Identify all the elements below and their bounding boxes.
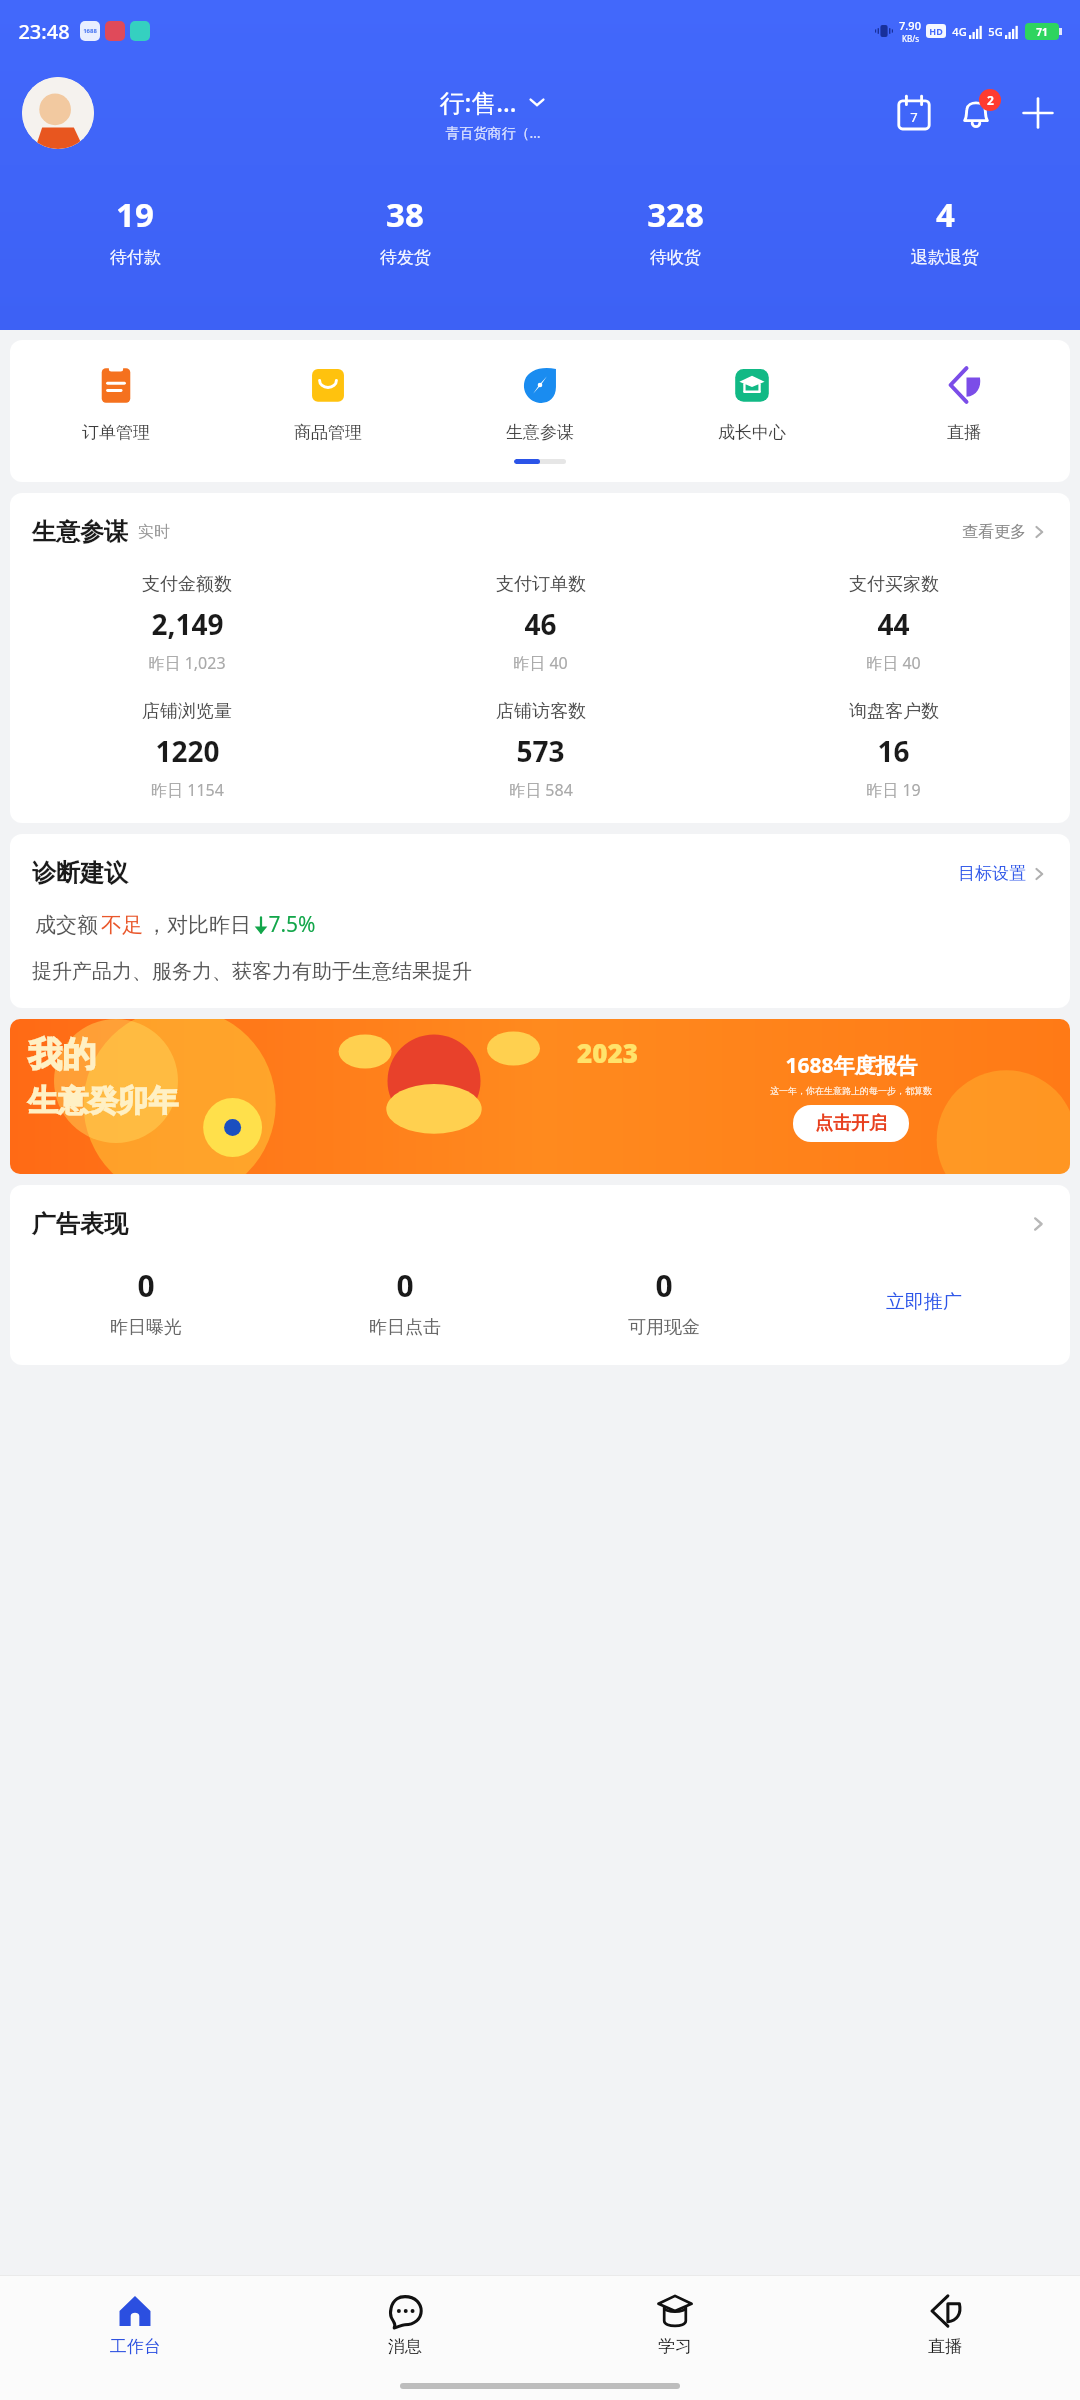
button[interactable]: 19 [0, 192, 270, 268]
button[interactable]: 4 [810, 192, 1080, 268]
staticText: 生意参谋 [506, 422, 574, 443]
staticText: 我的 [28, 1033, 96, 1076]
staticText: 青百货商行（… [445, 123, 541, 142]
staticText: 44 [877, 605, 910, 643]
button[interactable]: 直播 [810, 2276, 1080, 2372]
staticText: 这一年，你在生意路上的每一步，都算数 [770, 1085, 932, 1096]
button[interactable]: 0 [16, 1265, 275, 1339]
button[interactable]: 支付买家数 [717, 573, 1070, 674]
button[interactable]: Notifications [954, 91, 998, 135]
button[interactable]: 0 [534, 1265, 794, 1339]
button[interactable]: 学习 [540, 2276, 810, 2372]
staticText: 待收货 [650, 247, 701, 268]
staticText: 4G [952, 24, 967, 39]
staticText: 退款退货 [911, 247, 979, 268]
staticText: KB/s [902, 33, 919, 44]
staticText: 直播 [928, 2336, 962, 2357]
button[interactable]: 查看更多 [962, 522, 1048, 542]
staticText: 询盘客户数 [849, 700, 939, 723]
staticText: 支付金额数 [142, 573, 232, 596]
button[interactable]: 成长中心 [646, 362, 858, 443]
staticText: 昨日 40 [513, 652, 568, 674]
staticText: 7.5% [268, 910, 316, 939]
button[interactable]: 我的 [10, 1019, 1070, 1174]
staticText: 不足 [101, 912, 143, 938]
button[interactable]: Add [1016, 91, 1060, 135]
staticText: 广告表现 [32, 1209, 128, 1239]
staticText: 昨日 19 [866, 779, 921, 801]
staticText: 支付订单数 [496, 573, 586, 596]
button[interactable]: 订单管理 [10, 362, 222, 443]
staticText: 支付买家数 [849, 573, 939, 596]
staticText: 1688 [83, 27, 97, 35]
staticText: 实时 [138, 522, 170, 542]
button[interactable]: Profile avatar [22, 77, 94, 149]
button[interactable]: 38 [270, 192, 540, 268]
staticText: 工作台 [110, 2336, 161, 2357]
staticText: 昨日 584 [509, 779, 573, 801]
button[interactable]: 立即推广 [794, 1290, 1054, 1314]
button[interactable]: 行:售… [439, 85, 547, 142]
button[interactable]: 直播 [858, 362, 1070, 443]
staticText: 学习 [658, 2336, 692, 2357]
staticText: 昨日曝光 [110, 1316, 182, 1339]
staticText: 待发货 [380, 247, 431, 268]
button[interactable]: 点击开启 [815, 1112, 887, 1135]
staticText: 0 [137, 1265, 155, 1306]
staticText: 查看更多 [962, 522, 1026, 542]
staticText: 目标设置 [958, 863, 1026, 884]
button[interactable]: 商品管理 [222, 362, 434, 443]
staticText: 昨日 1,023 [148, 652, 226, 674]
button[interactable]: 支付金额数 [10, 573, 364, 674]
staticText: 点击开启 [815, 1112, 887, 1135]
staticText: 1688年度报告 [785, 1051, 918, 1080]
staticText: 成交额 [32, 910, 101, 939]
button[interactable]: 生意参谋 [434, 362, 646, 443]
staticText: 7 [910, 108, 918, 126]
staticText: 消息 [388, 2336, 422, 2357]
staticText: 573 [516, 732, 565, 770]
staticText: 昨日点击 [369, 1316, 441, 1339]
staticText: 立即推广 [886, 1290, 962, 1314]
staticText: 生意癸卯年 [28, 1082, 178, 1120]
button[interactable]: 工作台 [0, 2276, 270, 2372]
staticText: 商品管理 [294, 422, 362, 443]
staticText: 提升产品力、服务力、获客力有助于生意结果提升 [32, 959, 472, 984]
staticText: 店铺浏览量 [142, 700, 232, 723]
staticText: 328 [647, 192, 704, 237]
button[interactable]: 支付订单数 [364, 573, 717, 674]
staticText: 2 [987, 92, 994, 108]
staticText: 可用现金 [628, 1316, 700, 1339]
button[interactable]: Calendar [892, 91, 936, 135]
button[interactable]: 328 [540, 192, 810, 268]
button[interactable]: 店铺浏览量 [10, 700, 364, 801]
staticText: 行:售… [439, 85, 517, 119]
staticText: 1220 [155, 732, 220, 770]
staticText: 46 [524, 605, 557, 643]
staticText: 直播 [947, 422, 981, 443]
staticText: 23:48 [18, 18, 70, 45]
staticText: 店铺访客数 [496, 700, 586, 723]
staticText: 7.90 [899, 18, 921, 33]
staticText: HD [929, 25, 943, 37]
button[interactable]: 消息 [270, 2276, 540, 2372]
staticText: 19 [116, 192, 154, 237]
staticText: 生意参谋 [32, 517, 128, 547]
staticText: 昨日 1154 [151, 779, 224, 801]
button[interactable]: 目标设置 [958, 863, 1048, 884]
staticText: 0 [655, 1265, 673, 1306]
staticText: 16 [877, 732, 910, 770]
staticText: 38 [386, 192, 424, 237]
button[interactable]: 广告表现 [32, 1209, 1048, 1239]
staticText: 71 [1036, 25, 1048, 39]
button[interactable]: 店铺访客数 [364, 700, 717, 801]
staticText: ，对比昨日 [143, 910, 254, 939]
staticText: 0 [396, 1265, 414, 1306]
staticText: 订单管理 [82, 422, 150, 443]
staticText: 诊断建议 [32, 858, 128, 888]
button[interactable]: 0 [275, 1265, 534, 1339]
staticText: 昨日 40 [866, 652, 921, 674]
button[interactable]: 询盘客户数 [717, 700, 1070, 801]
staticText: 5G [988, 24, 1003, 39]
staticText: 成长中心 [718, 422, 786, 443]
